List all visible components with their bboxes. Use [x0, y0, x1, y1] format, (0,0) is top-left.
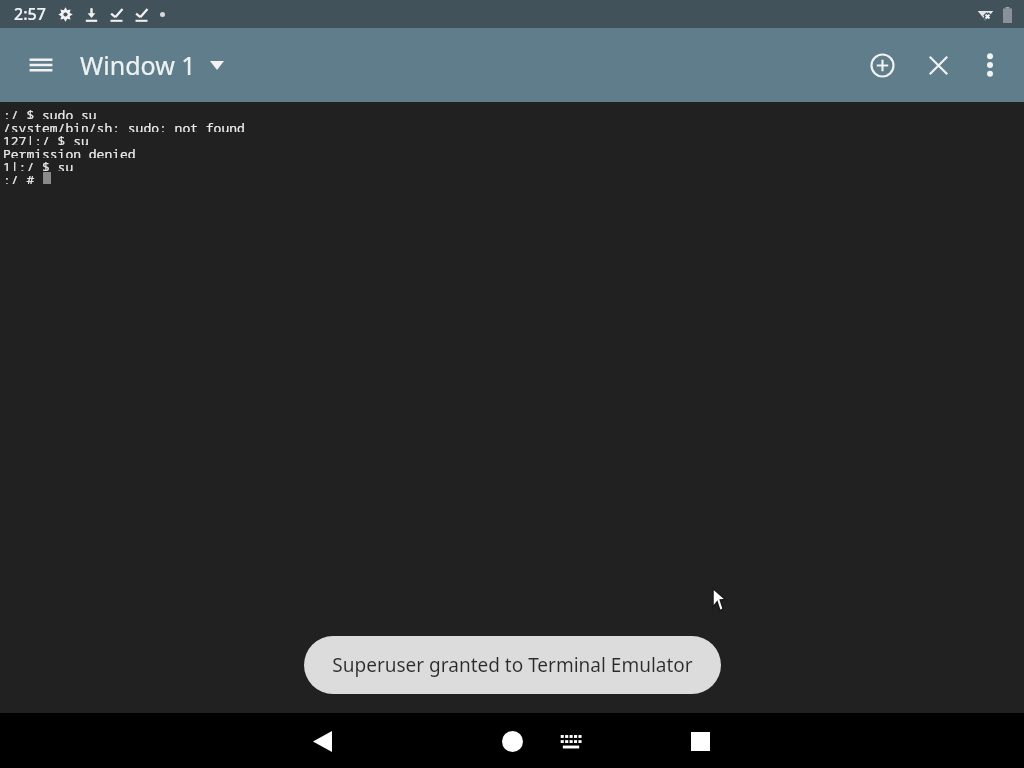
- staticText: 127|:/ $ su: [3, 132, 89, 145]
- staticText: Window 1: [80, 48, 196, 82]
- button[interactable]: Superuser granted to Terminal Emulator: [304, 636, 721, 694]
- staticText: Permission denied: [3, 145, 136, 158]
- button[interactable]: Home: [486, 715, 538, 767]
- button[interactable]: Recent apps: [674, 715, 726, 767]
- button[interactable]: Open navigation drawer: [14, 38, 68, 92]
- button[interactable]: Show keyboard: [545, 715, 597, 767]
- staticText: :/ $ sudo su: [3, 106, 97, 119]
- staticText: 1|:/ $ su: [3, 158, 74, 171]
- staticText: Superuser granted to Terminal Emulator: [332, 652, 693, 678]
- staticText: :/ #: [3, 171, 43, 184]
- staticText: 2:57: [14, 3, 46, 25]
- button[interactable]: Window 1: [74, 42, 230, 88]
- button[interactable]: New window: [856, 39, 908, 91]
- button[interactable]: Back: [296, 715, 348, 767]
- staticText: /system/bin/sh: sudo: not found: [3, 119, 245, 132]
- button[interactable]: Close window: [912, 39, 964, 91]
- button[interactable]: More options: [964, 39, 1016, 91]
